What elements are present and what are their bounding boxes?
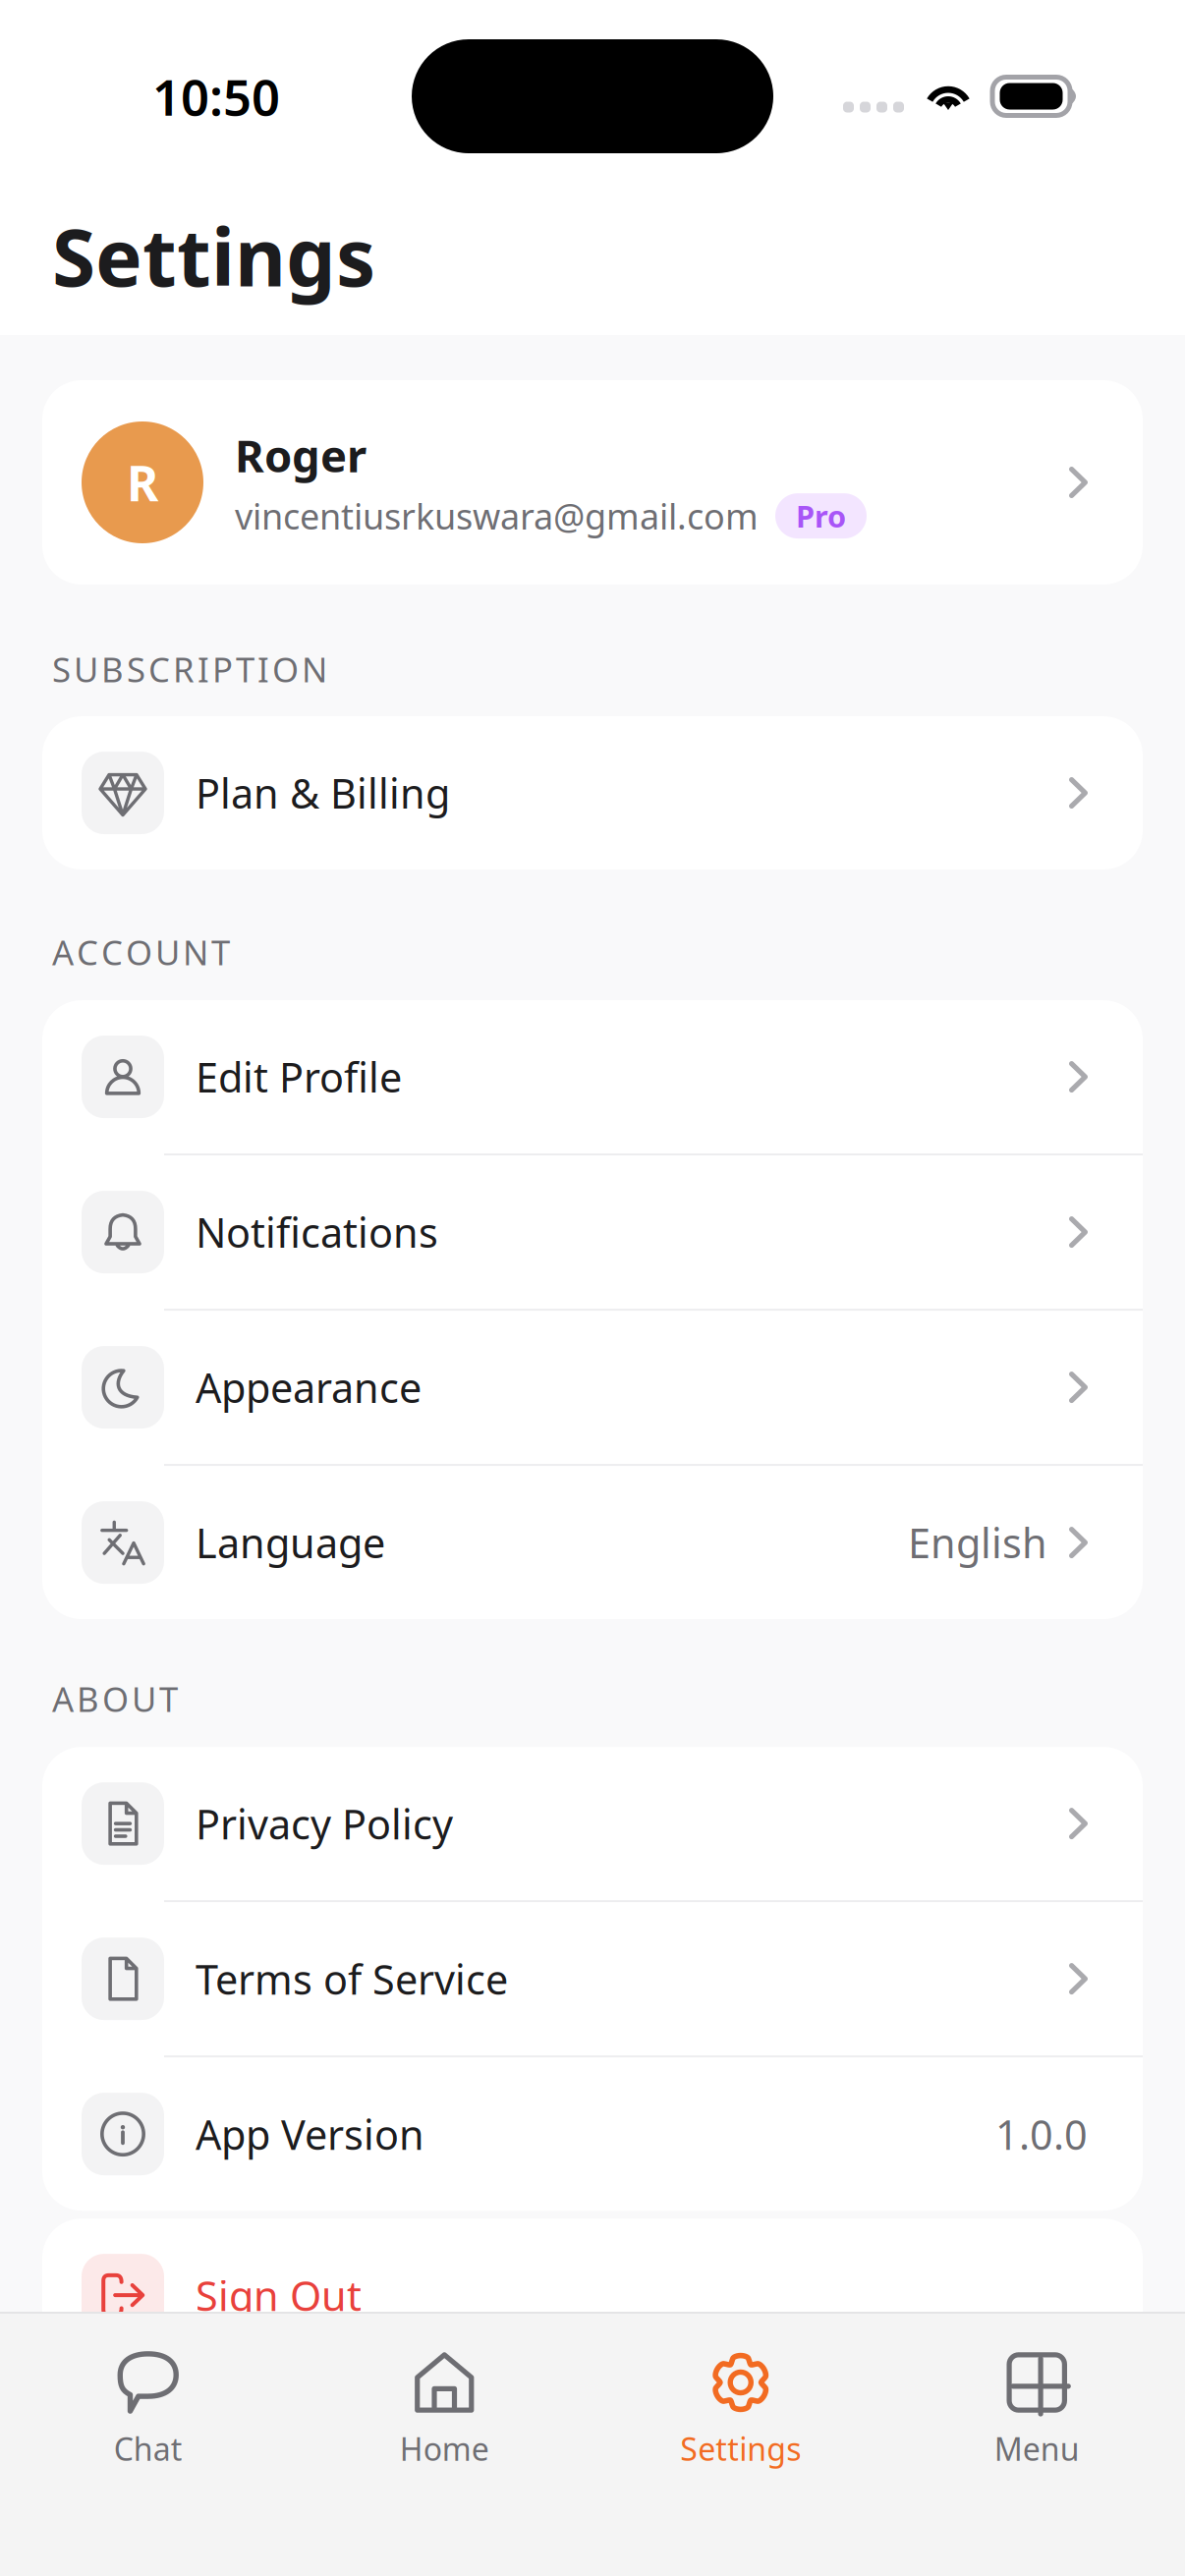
staticText: A C C O U N T — [52, 929, 230, 975]
staticText: Terms of Service — [196, 1952, 508, 2006]
button[interactable]: App Version — [42, 2057, 1143, 2211]
staticText: A B O U T — [52, 1676, 178, 1721]
staticText: S U B S C R I P T I O N — [52, 646, 327, 692]
button[interactable]: Edit Profile — [42, 1000, 1143, 1154]
staticText: Roger — [235, 425, 367, 485]
staticText: 1.0.0 — [995, 2107, 1088, 2161]
staticText: Sign Out — [196, 2268, 362, 2322]
staticText: R — [127, 450, 158, 515]
staticText: Edit Profile — [196, 1050, 402, 1104]
staticText: Language — [196, 1516, 385, 1569]
staticText: App Version — [196, 2107, 424, 2161]
button[interactable]: Appearance — [42, 1311, 1143, 1464]
staticText: English — [908, 1516, 1047, 1569]
staticText: Privacy Policy — [196, 1797, 453, 1851]
button[interactable]: R — [42, 380, 1143, 585]
staticText: Notifications — [196, 1205, 438, 1259]
staticText: Plan & Billing — [196, 766, 450, 820]
button[interactable]: Sign Out — [42, 2218, 1143, 2372]
button[interactable]: Privacy Policy — [42, 1747, 1143, 1900]
staticText: Pro — [796, 496, 846, 536]
button[interactable]: Home — [296, 2351, 592, 2469]
button[interactable]: Language — [42, 1466, 1143, 1619]
staticText: 10:50 — [152, 63, 280, 129]
staticText: vincentiusrkuswara@gmail.com — [235, 492, 759, 539]
staticText: Settings — [52, 204, 375, 308]
button[interactable]: Settings — [592, 2351, 889, 2469]
button[interactable]: Menu — [889, 2351, 1185, 2469]
staticText: Settings — [680, 2428, 801, 2469]
button[interactable]: Chat — [0, 2351, 296, 2469]
staticText: Menu — [994, 2428, 1080, 2469]
button[interactable]: Notifications — [42, 1155, 1143, 1309]
button[interactable]: Plan & Billing — [42, 716, 1143, 869]
button[interactable]: Terms of Service — [42, 1902, 1143, 2055]
staticText: Appearance — [196, 1360, 422, 1414]
staticText: Home — [400, 2428, 489, 2469]
staticText: Chat — [114, 2428, 183, 2469]
